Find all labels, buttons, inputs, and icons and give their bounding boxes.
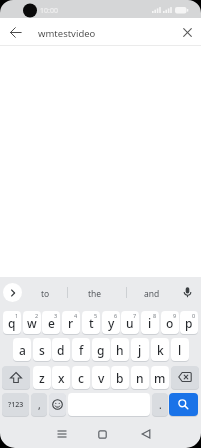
button[interactable]: the [70, 284, 120, 303]
staticText: 1 [15, 312, 19, 319]
staticText: v [98, 370, 105, 386]
button[interactable]: p [180, 311, 198, 334]
staticText: u [126, 315, 134, 331]
staticText: 5 [94, 312, 98, 319]
staticText: f [79, 342, 84, 358]
button[interactable]: s [33, 338, 51, 361]
button[interactable] [134, 424, 158, 444]
staticText: y [108, 315, 115, 331]
staticText: 2 [35, 312, 39, 319]
button[interactable]: a [13, 338, 31, 361]
button[interactable] [50, 424, 74, 444]
button[interactable]: y [102, 311, 120, 334]
button[interactable]: . [152, 393, 168, 416]
button[interactable] [178, 23, 196, 41]
button[interactable]: t [82, 311, 100, 334]
staticText: to [41, 288, 50, 300]
button[interactable] [3, 283, 22, 302]
staticText: i [148, 315, 152, 331]
staticText: e [48, 315, 55, 331]
staticText: ?123 [8, 400, 24, 410]
staticText: the [88, 288, 102, 300]
staticText: m [154, 370, 166, 386]
button[interactable] [178, 283, 197, 302]
staticText: . [159, 398, 162, 412]
staticText: 6 [114, 312, 118, 319]
staticText: t [89, 315, 94, 331]
staticText: 0 [192, 312, 196, 319]
staticText: s [39, 342, 45, 358]
button[interactable]: e [42, 311, 60, 334]
button[interactable]: x [52, 366, 70, 389]
button[interactable]: , [31, 393, 47, 416]
button[interactable]: z [33, 366, 51, 389]
button[interactable] [6, 23, 26, 43]
button[interactable]: n [131, 366, 149, 389]
staticText: j [138, 342, 142, 358]
button[interactable]: f [72, 338, 90, 361]
staticText: a [19, 342, 26, 358]
button[interactable]: g [92, 338, 110, 361]
staticText: d [57, 342, 65, 358]
staticText: c [78, 370, 84, 386]
staticText: z [39, 370, 45, 386]
button[interactable]: ?123 [2, 393, 29, 416]
staticText: p [185, 315, 193, 331]
staticText: and [144, 288, 160, 300]
staticText: 7 [133, 312, 137, 319]
button[interactable]: r [62, 311, 80, 334]
button[interactable]: u [121, 311, 139, 334]
staticText: x [58, 370, 65, 386]
staticText: o [166, 315, 174, 331]
staticText: 3 [54, 312, 58, 319]
button[interactable]: j [131, 338, 149, 361]
staticText: wmtestvideo [38, 27, 96, 40]
button[interactable] [90, 424, 114, 444]
staticText: 8 [153, 312, 157, 319]
button[interactable] [49, 393, 66, 416]
staticText: r [68, 315, 74, 331]
staticText: 10:00 [40, 6, 58, 16]
button[interactable]: l [171, 338, 189, 361]
staticText: g [97, 342, 105, 358]
button[interactable]: h [111, 338, 129, 361]
button[interactable]: to [26, 284, 64, 303]
staticText: n [136, 370, 144, 386]
staticText: 9 [173, 312, 177, 319]
button[interactable]: q [3, 311, 21, 334]
staticText: k [157, 342, 164, 358]
button[interactable]: k [151, 338, 169, 361]
button[interactable]: and [128, 284, 176, 303]
button[interactable]: m [151, 366, 169, 389]
button[interactable]: d [52, 338, 70, 361]
button[interactable]: c [72, 366, 90, 389]
button[interactable]: b [111, 366, 129, 389]
staticText: , [38, 398, 41, 412]
staticText: b [116, 370, 124, 386]
button[interactable]: o [161, 311, 179, 334]
button[interactable]: w [23, 311, 41, 334]
button[interactable]: i [141, 311, 159, 334]
button[interactable]: v [92, 366, 110, 389]
staticText: h [116, 342, 124, 358]
staticText: w [27, 315, 37, 331]
button[interactable] [169, 393, 198, 416]
button[interactable] [2, 366, 30, 389]
staticText: q [8, 315, 16, 331]
staticText: l [178, 342, 182, 358]
button[interactable] [171, 366, 199, 389]
staticText: 4 [74, 312, 78, 319]
